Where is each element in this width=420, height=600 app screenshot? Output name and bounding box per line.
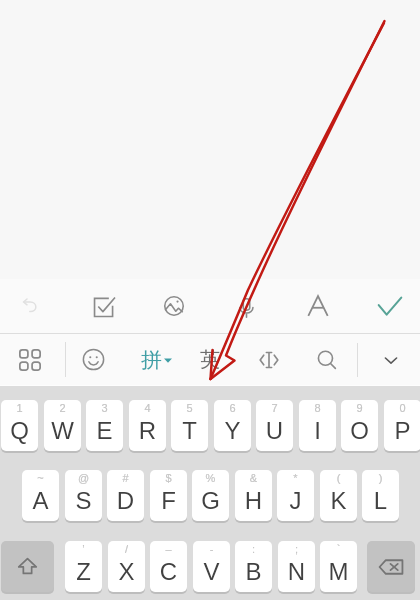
- staticText: A: [22, 487, 59, 514]
- staticText: O: [341, 417, 378, 444]
- button[interactable]: 1: [1, 400, 38, 451]
- staticText: *: [277, 472, 314, 484]
- staticText: #: [107, 472, 144, 484]
- staticText: –: [150, 543, 187, 555]
- button[interactable]: Search: [305, 334, 349, 385]
- button[interactable]: /: [108, 541, 145, 592]
- staticText: L: [362, 487, 399, 514]
- staticText: U: [256, 417, 293, 444]
- staticText: X: [108, 558, 145, 585]
- staticText: H: [235, 487, 272, 514]
- button[interactable]: Move cursor: [247, 334, 291, 385]
- button[interactable]: Undo: [8, 279, 54, 333]
- button[interactable]: Confirm: [367, 279, 413, 333]
- staticText: ): [362, 472, 399, 484]
- staticText: -: [193, 543, 230, 555]
- staticText: 6: [214, 402, 251, 414]
- button[interactable]: (: [320, 470, 357, 521]
- button[interactable]: –: [150, 541, 187, 592]
- staticText: 7: [256, 402, 293, 414]
- button[interactable]: :: [235, 541, 272, 592]
- button[interactable]: Shift: [1, 541, 54, 592]
- button[interactable]: ): [362, 470, 399, 521]
- staticText: B: [235, 558, 272, 585]
- button[interactable]: Images: [151, 279, 197, 333]
- button[interactable]: 8: [299, 400, 336, 451]
- button[interactable]: 5: [171, 400, 208, 451]
- button[interactable]: 英: [190, 334, 230, 385]
- staticText: 9: [341, 402, 378, 414]
- button[interactable]: 9: [341, 400, 378, 451]
- button[interactable]: $: [150, 470, 187, 521]
- button[interactable]: Voice input: [223, 279, 269, 333]
- staticText: /: [108, 543, 145, 555]
- staticText: J: [277, 487, 314, 514]
- staticText: K: [320, 487, 357, 514]
- staticText: Y: [214, 417, 251, 444]
- button[interactable]: #: [107, 470, 144, 521]
- staticText: 英: [200, 347, 220, 372]
- button[interactable]: *: [277, 470, 314, 521]
- button[interactable]: Keyboard layouts: [8, 334, 52, 385]
- staticText: 5: [171, 402, 208, 414]
- staticText: %: [192, 472, 229, 484]
- staticText: 1: [1, 402, 38, 414]
- staticText: S: [65, 487, 102, 514]
- button[interactable]: @: [65, 470, 102, 521]
- staticText: Z: [65, 558, 102, 585]
- button[interactable]: ~: [22, 470, 59, 521]
- staticText: V: [193, 558, 230, 585]
- button[interactable]: ’: [65, 541, 102, 592]
- staticText: @: [65, 472, 102, 484]
- staticText: E: [86, 417, 123, 444]
- button[interactable]: -: [193, 541, 230, 592]
- staticText: 拼: [141, 347, 162, 373]
- staticText: Q: [1, 417, 38, 444]
- button[interactable]: Delete: [367, 541, 415, 592]
- button[interactable]: Hide keyboard: [369, 334, 413, 385]
- button[interactable]: 6: [214, 400, 251, 451]
- staticText: N: [278, 558, 315, 585]
- staticText: :: [235, 543, 272, 555]
- staticText: D: [107, 487, 144, 514]
- staticText: R: [129, 417, 166, 444]
- staticText: ;: [278, 543, 315, 555]
- staticText: 0: [384, 402, 420, 414]
- staticText: 2: [44, 402, 81, 414]
- button[interactable]: 2: [44, 400, 81, 451]
- button[interactable]: Select text: [81, 279, 127, 333]
- staticText: 8: [299, 402, 336, 414]
- staticText: (: [320, 472, 357, 484]
- staticText: C: [150, 558, 187, 585]
- staticText: 4: [129, 402, 166, 414]
- button[interactable]: Text style: [295, 279, 341, 333]
- button[interactable]: 0: [384, 400, 420, 451]
- button[interactable]: 3: [86, 400, 123, 451]
- button[interactable]: 7: [256, 400, 293, 451]
- staticText: ’: [65, 543, 102, 555]
- staticText: W: [44, 417, 81, 444]
- staticText: P: [384, 417, 420, 444]
- staticText: F: [150, 487, 187, 514]
- staticText: 3: [86, 402, 123, 414]
- button[interactable]: %: [192, 470, 229, 521]
- button[interactable]: 4: [129, 400, 166, 451]
- button[interactable]: Emoji: [71, 334, 115, 385]
- button[interactable]: &: [235, 470, 272, 521]
- staticText: T: [171, 417, 208, 444]
- staticText: $: [150, 472, 187, 484]
- button[interactable]: 拼: [141, 334, 185, 385]
- button[interactable]: `: [320, 541, 357, 592]
- staticText: G: [192, 487, 229, 514]
- button[interactable]: ;: [278, 541, 315, 592]
- staticText: M: [320, 558, 357, 585]
- staticText: &: [235, 472, 272, 484]
- staticText: I: [299, 417, 336, 444]
- staticText: `: [320, 543, 357, 555]
- staticText: ~: [22, 472, 59, 484]
